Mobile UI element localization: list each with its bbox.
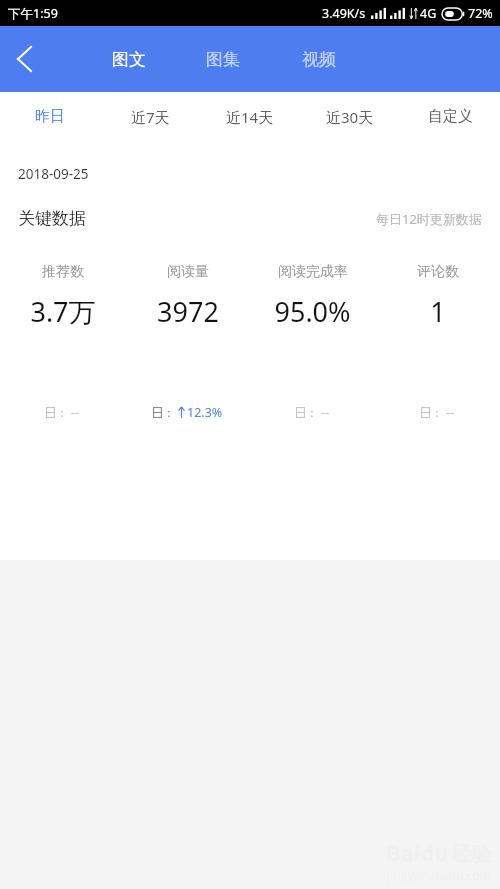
staticText: 每日12时更新数据 (376, 210, 482, 228)
staticText: 近7天 (131, 107, 170, 127)
staticText: ： (306, 405, 318, 420)
staticText: 2018-09-25 (18, 165, 89, 183)
staticText: 阅读量 (167, 263, 209, 281)
button[interactable]: 昨日 (0, 107, 100, 126)
staticText: ： (56, 405, 68, 420)
button[interactable]: 图集 (204, 43, 242, 76)
staticText: 图集 (206, 49, 240, 70)
staticText: 3.7万 (30, 293, 96, 330)
staticText: 12.3% (187, 404, 223, 421)
staticText: -- (446, 404, 455, 421)
staticText: -- (321, 404, 330, 421)
staticText: 72% (468, 5, 493, 22)
staticText: 评论数 (417, 263, 459, 281)
button[interactable]: 近14天 (200, 107, 300, 127)
staticText: 下午1:59 (8, 5, 58, 22)
staticText: 视频 (302, 49, 336, 70)
staticText: 阅读完成率 (278, 263, 348, 281)
staticText: ： (431, 405, 443, 420)
staticText: 图文 (112, 49, 146, 70)
staticText: ： (163, 405, 175, 420)
button[interactable]: 视频 (300, 43, 338, 76)
staticText: 1 (430, 293, 446, 330)
staticText: 昨日 (35, 107, 65, 126)
staticText: 4G (420, 5, 437, 22)
staticText: 3.49K/s (322, 5, 366, 22)
button[interactable]: 近30天 (300, 107, 400, 127)
button[interactable]: 图文 (110, 43, 148, 76)
button[interactable]: 自定义 (400, 107, 500, 126)
staticText: -- (71, 404, 80, 421)
button[interactable]: 近7天 (100, 107, 200, 127)
staticText: 关键数据 (18, 208, 86, 229)
staticText: 95.0% (274, 293, 351, 330)
staticText: 自定义 (428, 107, 473, 126)
staticText: 近14天 (226, 107, 274, 127)
staticText: 3972 (157, 293, 219, 330)
staticText: 近30天 (326, 107, 374, 127)
staticText: 推荐数 (42, 263, 84, 281)
button[interactable]: 返回 (0, 35, 48, 83)
